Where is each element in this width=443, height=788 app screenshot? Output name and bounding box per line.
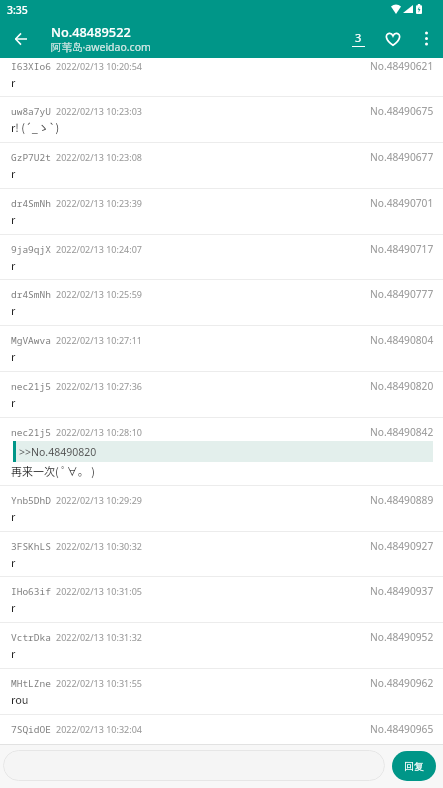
staticText: r — [11, 599, 16, 615]
staticText: VctrDka — [11, 631, 51, 644]
staticText: 2022/02/13 10:27:36 — [56, 380, 142, 392]
staticText: 2022/02/13 10:24:07 — [56, 243, 142, 255]
button[interactable]: GzP7U2t — [0, 143, 443, 189]
staticText: No.48490701 — [370, 196, 434, 210]
staticText: MHtLZne — [11, 677, 51, 690]
button[interactable]: Ynb5DhD — [0, 486, 443, 532]
staticText: No.48490777 — [370, 287, 434, 301]
button[interactable]: MgVAwva — [0, 326, 443, 372]
staticText: No.48490842 — [370, 425, 434, 439]
button[interactable]: 回复 — [392, 751, 436, 781]
staticText: I63XIo6 — [11, 60, 51, 73]
staticText: 2022/02/13 10:23:08 — [56, 151, 142, 163]
staticText: r — [11, 211, 16, 227]
staticText: No.48490677 — [370, 150, 434, 164]
staticText: r — [11, 165, 16, 181]
staticText: No.48490804 — [370, 333, 434, 347]
staticText: r — [11, 508, 16, 524]
button[interactable]: 3FSKhLS — [0, 532, 443, 577]
staticText: No.48490820 — [370, 379, 434, 393]
staticText: 2022/02/13 10:30:32 — [56, 540, 142, 552]
button[interactable]: Reply input — [3, 750, 385, 781]
staticText: GzP7U2t — [11, 151, 51, 164]
staticText: r — [11, 74, 16, 90]
staticText: 2022/02/13 10:23:39 — [56, 197, 142, 209]
staticText: No.48490952 — [370, 630, 434, 644]
staticText: r! (´_ゝ`) — [11, 119, 60, 135]
staticText: 3 — [355, 30, 362, 45]
staticText: rou — [11, 691, 29, 707]
button[interactable]: dr4SmNh — [0, 189, 443, 235]
button[interactable]: dr4SmNh — [0, 280, 443, 326]
staticText: IHo63if — [11, 585, 51, 598]
staticText: 再来一次( ﾟ∀。 ) — [11, 463, 95, 479]
staticText: No.48490675 — [370, 104, 434, 118]
staticText: 阿苇岛·aweidao.com — [51, 40, 151, 54]
staticText: 2022/02/13 10:31:05 — [56, 585, 142, 597]
staticText: r — [11, 645, 16, 661]
staticText: r — [11, 302, 16, 318]
button[interactable]: Back — [3, 21, 39, 57]
staticText: nec21j5 — [11, 426, 51, 439]
staticText: 2022/02/13 10:25:59 — [56, 288, 142, 300]
staticText: No.48490889 — [370, 493, 434, 507]
staticText: 9ja9qjX — [11, 243, 51, 256]
staticText: 3FSKhLS — [11, 540, 51, 553]
staticText: uw8a7yU — [11, 105, 51, 118]
button[interactable]: 9ja9qjX — [0, 235, 443, 280]
staticText: MgVAwva — [11, 334, 51, 347]
staticText: 2022/02/13 10:27:11 — [56, 334, 142, 346]
button[interactable]: nec21j5 — [0, 418, 443, 486]
staticText: No.48490717 — [370, 242, 434, 256]
staticText: 7SQidOE — [11, 723, 51, 736]
button[interactable]: More options — [410, 19, 443, 58]
staticText: nec21j5 — [11, 380, 51, 393]
staticText: 2022/02/13 10:32:04 — [56, 723, 142, 735]
button[interactable]: 7SQidOE — [0, 715, 443, 738]
staticText: No.48490937 — [370, 584, 434, 598]
button[interactable]: nec21j5 — [0, 372, 443, 418]
button[interactable]: I63XIo6 — [0, 58, 443, 97]
button[interactable]: Page 3 — [340, 19, 376, 58]
staticText: dr4SmNh — [11, 197, 51, 210]
button[interactable]: IHo63if — [0, 577, 443, 623]
staticText: No.48489522 — [51, 23, 131, 40]
staticText: Ynb5DhD — [11, 494, 51, 507]
staticText: 2022/02/13 10:28:10 — [56, 426, 142, 438]
button[interactable]: VctrDka — [0, 623, 443, 669]
staticText: 回复 — [404, 760, 424, 773]
staticText: 3:35 — [7, 3, 28, 17]
button[interactable]: MHtLZne — [0, 669, 443, 715]
staticText: 2022/02/13 10:31:55 — [56, 677, 142, 689]
staticText: 2022/02/13 10:31:32 — [56, 631, 142, 643]
staticText: r — [11, 394, 16, 410]
staticText: No.48490965 — [370, 722, 434, 736]
button[interactable]: uw8a7yU — [0, 97, 443, 143]
staticText: dr4SmNh — [11, 288, 51, 301]
staticText: 2022/02/13 10:23:03 — [56, 105, 142, 117]
staticText: No.48490962 — [370, 676, 434, 690]
staticText: No.48490621 — [370, 59, 434, 73]
staticText: r — [11, 257, 16, 273]
staticText: 2022/02/13 10:20:54 — [56, 60, 142, 72]
staticText: No.48490927 — [370, 539, 434, 553]
staticText: 2022/02/13 10:29:29 — [56, 494, 142, 506]
staticText: r — [11, 348, 16, 364]
staticText: >>No.48490820 — [19, 445, 97, 459]
button[interactable]: Favorite — [376, 19, 410, 58]
staticText: r — [11, 554, 16, 570]
